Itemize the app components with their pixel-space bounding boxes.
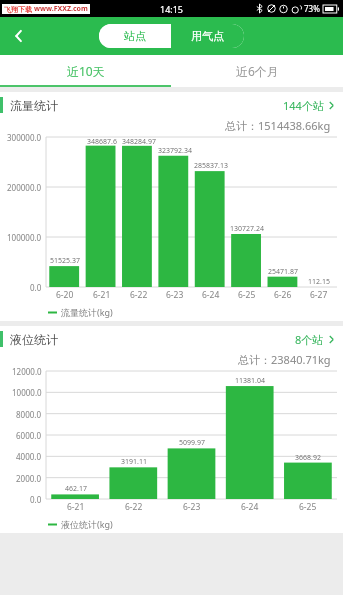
staticText: 2000.0 xyxy=(16,473,42,484)
staticText: 11381.04 xyxy=(235,376,265,386)
staticText: 液位统计(kg) xyxy=(61,518,113,530)
staticText: 348284.97 xyxy=(122,137,156,146)
staticText: 8000.0 xyxy=(16,409,42,420)
staticText: 6-22 xyxy=(125,501,143,513)
staticText: 近6个月 xyxy=(236,63,279,79)
staticText: 6-23 xyxy=(183,501,201,513)
staticText: 73% xyxy=(304,3,320,14)
staticText: 144个站 xyxy=(283,98,324,113)
staticText: 14:15 xyxy=(160,3,184,15)
staticText: 总计：23840.71kg xyxy=(238,352,331,367)
staticText: 6-25 xyxy=(238,289,256,301)
staticText: 12000.0 xyxy=(12,366,42,377)
staticText: 285837.13 xyxy=(194,161,228,171)
staticText: 站点 xyxy=(124,29,146,43)
staticText: 51525.37 xyxy=(50,256,80,266)
staticText: 0.0 xyxy=(30,494,42,505)
staticText: 3191.11 xyxy=(121,457,147,467)
button[interactable]: 用气点 xyxy=(171,24,244,48)
staticText: 348687.6 xyxy=(87,137,117,146)
staticText: 流量统计 xyxy=(10,98,58,113)
staticText: 6-21 xyxy=(67,501,85,513)
staticText: 4000.0 xyxy=(16,451,42,462)
staticText: 液位统计 xyxy=(10,332,58,347)
staticText: www.FXXZ.com xyxy=(34,4,88,14)
button[interactable]: 近6个月 xyxy=(171,55,343,87)
staticText: 6-23 xyxy=(166,289,184,301)
staticText: 300000.0 xyxy=(7,132,42,143)
staticText: 6-21 xyxy=(93,289,111,301)
button[interactable]: Back xyxy=(0,17,38,55)
button[interactable]: 144个站 xyxy=(275,98,343,113)
staticText: 8个站 xyxy=(295,332,324,347)
staticText: 25471.87 xyxy=(268,267,298,277)
staticText: 用气点 xyxy=(191,29,224,43)
staticText: 462.17 xyxy=(65,484,87,494)
button[interactable]: 站点 xyxy=(99,24,171,48)
staticText: 200000.0 xyxy=(7,182,42,193)
staticText: 10000.0 xyxy=(12,387,42,398)
staticText: 6-26 xyxy=(274,289,292,301)
staticText: 6-24 xyxy=(241,501,259,513)
staticText: 112.15 xyxy=(308,277,330,287)
staticText: 总计：1514438.66kg xyxy=(225,118,331,133)
staticText: 流量统计(kg) xyxy=(61,306,113,318)
staticText: 100000.0 xyxy=(7,232,42,243)
staticText: 3668.92 xyxy=(295,453,321,463)
button[interactable]: 8个站 xyxy=(287,332,343,347)
staticText: 0.0 xyxy=(30,282,42,293)
staticText: 5099.97 xyxy=(179,438,205,448)
staticText: 6000.0 xyxy=(16,430,42,441)
staticText: 6-20 xyxy=(56,289,74,301)
staticText: 6-27 xyxy=(310,289,328,301)
staticText: 6-24 xyxy=(202,289,220,301)
staticText: 323792.34 xyxy=(158,146,192,156)
staticText: 飞翔下载 xyxy=(4,5,32,14)
button[interactable]: 近10天 xyxy=(0,55,171,87)
staticText: 近10天 xyxy=(67,63,105,79)
staticText: 6-22 xyxy=(130,289,148,301)
staticText: 6-25 xyxy=(299,501,317,513)
staticText: 130727.24 xyxy=(230,224,264,234)
